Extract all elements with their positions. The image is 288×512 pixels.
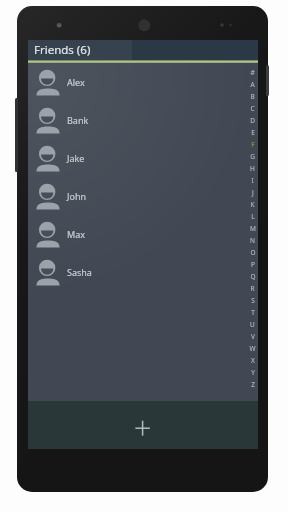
button[interactable]: Max	[28, 215, 258, 253]
staticText: O	[250, 248, 256, 257]
staticText: V	[251, 332, 255, 341]
staticText: Max	[67, 228, 85, 240]
button[interactable]: John	[28, 177, 258, 215]
button[interactable]: Add friend	[28, 401, 258, 449]
staticText: A	[250, 80, 255, 89]
staticText: W	[249, 344, 256, 353]
staticText: Friends (6)	[34, 42, 91, 58]
button[interactable]: Bank	[28, 101, 258, 139]
staticText: Z	[251, 380, 255, 389]
staticText: G	[250, 152, 255, 161]
staticText: Q	[250, 272, 256, 281]
staticText: S	[251, 296, 255, 305]
staticText: E	[251, 128, 255, 137]
staticText: L	[251, 212, 255, 221]
staticText: Alex	[67, 76, 85, 88]
staticText: Bank	[67, 114, 89, 126]
staticText: T	[251, 308, 255, 317]
staticText: #	[250, 68, 255, 77]
staticText: M	[250, 224, 256, 233]
staticText: B	[250, 92, 255, 101]
button[interactable]: Alex	[28, 63, 258, 101]
staticText: C	[250, 104, 255, 113]
staticText: John	[67, 190, 87, 202]
button[interactable]: Sasha	[28, 253, 258, 291]
button[interactable]: Friends (6)	[28, 40, 132, 60]
staticText: Sasha	[67, 266, 92, 278]
staticText: R	[250, 284, 255, 293]
staticText: D	[250, 116, 255, 125]
staticText: H	[250, 164, 255, 173]
staticText: N	[250, 236, 255, 245]
staticText: X	[251, 356, 255, 365]
staticText: U	[250, 320, 255, 329]
staticText: J	[252, 188, 254, 197]
staticText: P	[251, 260, 255, 269]
staticText: Y	[251, 368, 255, 377]
staticText: F	[251, 140, 255, 149]
staticText: Jake	[67, 152, 85, 164]
button[interactable]: Alphabet index	[248, 66, 257, 390]
staticText: I	[251, 176, 254, 185]
staticText: K	[250, 200, 255, 209]
button[interactable]: Jake	[28, 139, 258, 177]
